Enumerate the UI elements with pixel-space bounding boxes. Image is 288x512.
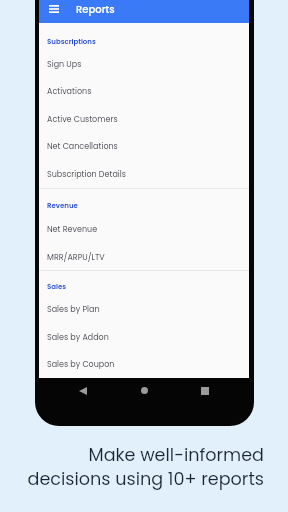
button[interactable]: Active Customers xyxy=(39,105,249,133)
staticText: Revenue xyxy=(47,201,78,211)
staticText: Subscription Details xyxy=(47,169,126,180)
staticText: Subscriptions xyxy=(47,37,96,47)
staticText: Net Cancellations xyxy=(47,141,118,152)
button[interactable]: MRR/ARPU/LTV xyxy=(39,243,249,271)
button[interactable]: Sales by Coupon xyxy=(39,350,249,378)
button[interactable]: Activations xyxy=(39,77,249,105)
staticText: MRR/ARPU/LTV xyxy=(47,252,105,263)
staticText: Sales by Coupon xyxy=(47,359,115,370)
button[interactable]: Net Cancellations xyxy=(39,132,249,160)
staticText: Make well-informed decisions using 10+ r… xyxy=(27,443,264,492)
staticText: Reports xyxy=(76,2,115,16)
staticText: Activations xyxy=(47,86,92,97)
button[interactable]: Net Revenue xyxy=(39,215,249,243)
button[interactable]: Sales by Plan xyxy=(39,295,249,323)
button[interactable]: Sign Ups xyxy=(39,50,249,78)
button[interactable]: Sales by Addon xyxy=(39,323,249,351)
staticText: Net Revenue xyxy=(47,224,98,235)
staticText: Active Customers xyxy=(47,114,118,125)
button[interactable]: Subscription Details xyxy=(39,160,249,188)
button[interactable]: Open navigation menu xyxy=(47,2,61,16)
button[interactable]: Home xyxy=(141,387,148,394)
staticText: Sign Ups xyxy=(47,59,82,70)
staticText: Sales xyxy=(47,282,67,292)
staticText: Sales by Addon xyxy=(47,332,109,343)
staticText: Sales by Plan xyxy=(47,304,100,315)
button[interactable]: Back xyxy=(79,387,87,395)
